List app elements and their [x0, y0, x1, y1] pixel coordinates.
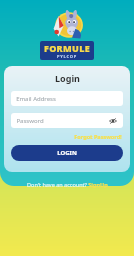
button[interactable]: Show password — [108, 116, 118, 126]
button[interactable]: Password — [11, 113, 123, 128]
button[interactable]: Forgot Password! — [73, 132, 123, 141]
staticText: Email Address — [16, 95, 56, 103]
staticText: FORMULE — [44, 42, 90, 54]
staticText: SignUp — [88, 181, 108, 188]
button[interactable]: LOGIN — [11, 145, 123, 161]
staticText: Forgot Password! — [74, 133, 122, 140]
button[interactable]: Don't have an account? — [24, 179, 110, 190]
staticText: Login — [55, 72, 80, 84]
staticText: LOGIN — [57, 149, 77, 157]
button[interactable]: Email Address — [11, 91, 123, 106]
staticText: Password — [16, 117, 44, 125]
staticText: PYLCOP — [57, 54, 78, 59]
staticText: Don't have an account? — [26, 181, 88, 188]
